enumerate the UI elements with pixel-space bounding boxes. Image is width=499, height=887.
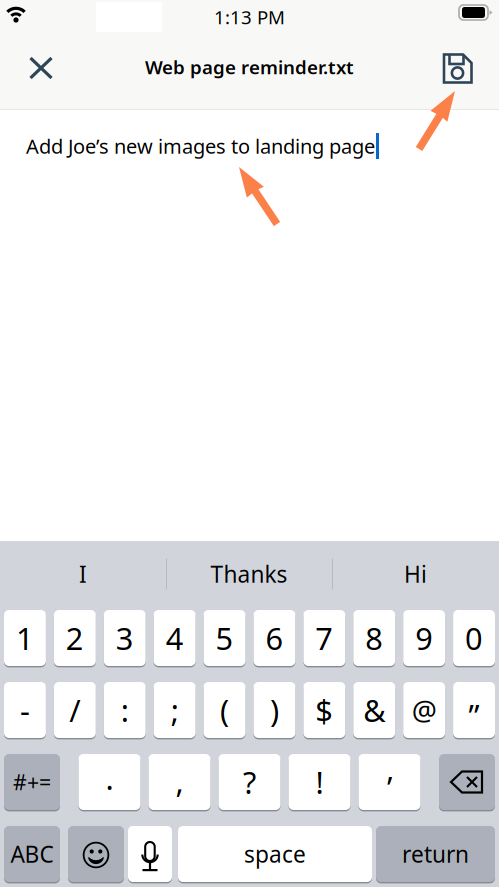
- button[interactable]: I: [0, 546, 166, 602]
- staticText: $: [315, 690, 333, 730]
- staticText: 7: [315, 618, 333, 658]
- staticText: I: [79, 559, 87, 589]
- button[interactable]: 3: [104, 610, 146, 668]
- button[interactable]: -: [4, 682, 46, 740]
- staticText: space: [244, 839, 306, 869]
- button[interactable]: space: [178, 826, 372, 884]
- staticText: 0: [465, 618, 483, 658]
- button[interactable]: 7: [303, 610, 345, 668]
- staticText: -: [20, 690, 30, 730]
- staticText: ): [270, 690, 279, 730]
- staticText: 9: [415, 618, 433, 658]
- button[interactable]: 0: [453, 610, 495, 668]
- staticText: &: [363, 690, 385, 730]
- button[interactable]: ?: [218, 754, 280, 812]
- staticText: ABC: [10, 839, 53, 869]
- staticText: 5: [216, 618, 234, 658]
- staticText: Add Joe’s new images to landing page.: [26, 133, 380, 159]
- staticText: @: [412, 691, 437, 729]
- button[interactable]: @: [403, 682, 445, 740]
- button[interactable]: #+=: [4, 754, 60, 812]
- button[interactable]: ABC: [4, 826, 60, 884]
- staticText: (: [220, 690, 229, 730]
- button[interactable]: Delete: [439, 754, 495, 812]
- staticText: !: [315, 762, 323, 802]
- button[interactable]: ): [253, 682, 295, 740]
- button[interactable]: Dictate: [128, 826, 172, 884]
- staticText: Thanks: [210, 559, 287, 589]
- staticText: 2: [66, 618, 84, 658]
- button[interactable]: .: [78, 754, 140, 812]
- button[interactable]: ”: [453, 682, 495, 740]
- button[interactable]: 6: [253, 610, 295, 668]
- button[interactable]: Emoji: [68, 826, 124, 884]
- button[interactable]: 8: [353, 610, 395, 668]
- staticText: 3: [116, 618, 134, 658]
- staticText: ,: [175, 761, 183, 801]
- button[interactable]: /: [54, 682, 96, 740]
- staticText: ?: [243, 762, 256, 802]
- staticText: 8: [365, 618, 383, 658]
- button[interactable]: Thanks: [166, 546, 332, 602]
- button[interactable]: (: [204, 682, 245, 740]
- staticText: 6: [265, 618, 283, 658]
- button[interactable]: Close: [18, 45, 64, 91]
- staticText: return: [402, 839, 469, 869]
- staticText: 4: [166, 618, 184, 658]
- staticText: #+=: [13, 768, 51, 796]
- staticText: ”: [468, 695, 479, 735]
- staticText: ;: [171, 690, 179, 730]
- button[interactable]: :: [104, 682, 146, 740]
- button[interactable]: $: [303, 682, 345, 740]
- button[interactable]: ’: [358, 754, 420, 812]
- staticText: Web page reminder.txt: [145, 55, 354, 79]
- button[interactable]: Hi: [332, 546, 499, 602]
- button[interactable]: 9: [403, 610, 445, 668]
- staticText: :: [121, 690, 129, 730]
- staticText: .: [105, 758, 113, 798]
- button[interactable]: 5: [204, 610, 245, 668]
- button[interactable]: 1: [4, 610, 46, 668]
- staticText: 1:13 PM: [214, 5, 285, 29]
- staticText: 1: [16, 618, 34, 658]
- button[interactable]: 4: [154, 610, 196, 668]
- button[interactable]: return: [376, 826, 495, 884]
- button[interactable]: 2: [54, 610, 96, 668]
- button[interactable]: ,: [148, 754, 210, 812]
- button[interactable]: !: [288, 754, 350, 812]
- staticText: Hi: [404, 559, 427, 589]
- button[interactable]: ;: [154, 682, 196, 740]
- button[interactable]: &: [353, 682, 395, 740]
- button[interactable]: Save: [431, 46, 477, 92]
- staticText: ’: [387, 767, 392, 807]
- staticText: /: [69, 690, 80, 730]
